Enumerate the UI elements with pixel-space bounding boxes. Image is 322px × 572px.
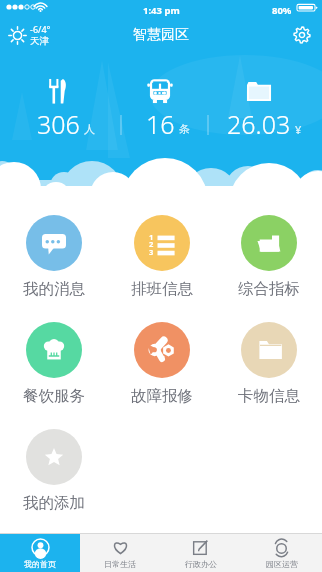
staticText: 人	[84, 122, 95, 136]
button[interactable]: 我的添加	[0, 429, 108, 513]
staticText: 我的首页	[24, 559, 56, 569]
button[interactable]: 故障报修	[108, 322, 215, 406]
staticText: 日常生活	[104, 559, 136, 569]
staticText: 园区运营	[266, 559, 298, 569]
staticText: -6/4°	[30, 23, 51, 35]
button[interactable]: 行政办公	[160, 534, 241, 572]
staticText: 条	[179, 122, 190, 136]
staticText: 智慧园区	[133, 26, 189, 44]
button[interactable]: 综合指标	[215, 215, 322, 299]
staticText: 1	[149, 232, 154, 242]
button[interactable]: 餐饮服务	[0, 322, 108, 406]
staticText: 天津	[30, 35, 49, 47]
staticText: 16	[146, 107, 175, 141]
button[interactable]: 日常生活	[80, 534, 160, 572]
staticText: 餐饮服务	[23, 386, 85, 406]
button[interactable]: 我的消息	[0, 215, 108, 299]
staticText: 我的消息	[23, 279, 85, 299]
staticText: 卡物信息	[238, 386, 300, 406]
staticText: 26.03	[227, 107, 291, 141]
staticText: 故障报修	[131, 386, 193, 406]
button[interactable]: 卡物信息	[215, 322, 322, 406]
button[interactable]: 我的首页	[0, 534, 80, 572]
staticText: 排班信息	[131, 279, 193, 299]
button[interactable]: 1	[108, 215, 215, 299]
staticText: ¥	[295, 122, 302, 137]
staticText: 综合指标	[238, 279, 300, 299]
staticText: 3	[149, 247, 154, 257]
button[interactable]: 26.03	[199, 77, 319, 111]
button[interactable]: 16	[100, 77, 220, 111]
button[interactable]: 园区运营	[241, 534, 322, 572]
staticText: 306	[37, 107, 80, 141]
button[interactable]: Settings	[289, 22, 315, 48]
button[interactable]: 306	[0, 77, 118, 111]
staticText: 我的添加	[23, 493, 85, 513]
button[interactable]: -6/4°	[8, 23, 51, 47]
staticText: 1:43 pm	[143, 4, 180, 17]
staticText: 80%	[272, 4, 292, 17]
staticText: 2	[149, 239, 154, 249]
staticText: 行政办公	[185, 559, 217, 569]
